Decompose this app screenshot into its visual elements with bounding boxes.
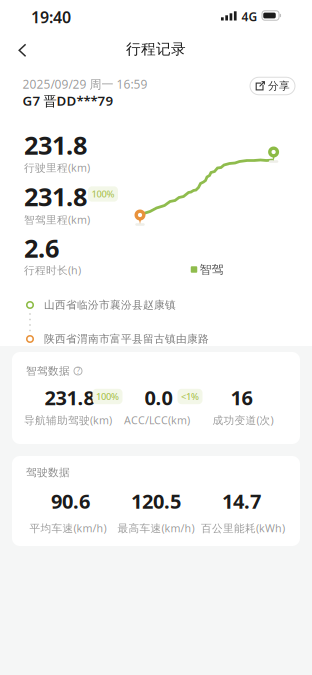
staticText: 2.6: [24, 231, 59, 265]
staticText: 100%: [91, 188, 114, 200]
staticText: 导航辅助驾驶(km): [24, 413, 112, 427]
button[interactable]: Back: [16, 43, 30, 57]
staticText: 百公里能耗(kWh): [201, 521, 285, 535]
staticText: 驾驶数据: [26, 466, 70, 479]
staticText: 231.8: [24, 180, 87, 213]
staticText: 陕西省渭南市富平县留古镇由康路: [44, 332, 209, 345]
staticText: 智驾数据: [26, 364, 70, 377]
staticText: 16: [230, 384, 252, 411]
staticText: 行驶里程(km): [24, 160, 90, 175]
staticText: 2025/09/29 周一 16:59: [22, 76, 147, 92]
staticText: 行程记录: [126, 40, 186, 58]
staticText: 19:40: [31, 6, 71, 28]
staticText: <1%: [181, 390, 199, 403]
button[interactable]: 分享: [250, 77, 295, 95]
staticText: 100%: [96, 390, 119, 403]
staticText: ?: [76, 366, 79, 376]
staticText: 山西省临汾市襄汾县赵康镇: [44, 298, 176, 311]
staticText: 231.8: [44, 384, 94, 411]
staticText: 最高车速(km/h): [117, 521, 194, 535]
staticText: 120.5: [131, 488, 181, 514]
staticText: ACC/LCC(km): [124, 413, 190, 427]
staticText: 行程时长(h): [24, 263, 81, 277]
staticText: G7 晋DD***79: [22, 92, 113, 109]
staticText: 平均车速(km/h): [29, 521, 106, 535]
staticText: 14.7: [222, 488, 261, 514]
staticText: 90.6: [51, 488, 90, 514]
staticText: 智驾: [199, 262, 223, 277]
staticText: 分享: [268, 79, 290, 92]
staticText: 0.0: [144, 384, 172, 411]
button[interactable]: 智驾数据说明: [73, 366, 83, 376]
staticText: 智驾里程(km): [24, 212, 90, 227]
staticText: 231.8: [24, 128, 87, 162]
staticText: 成功变道(次): [212, 413, 273, 427]
staticText: 4G: [241, 8, 257, 24]
